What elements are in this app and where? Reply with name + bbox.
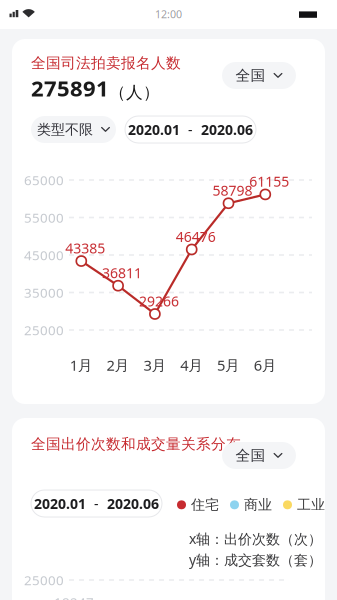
staticText: - [180, 120, 201, 139]
staticText: 全国司法拍卖报名人数 [31, 54, 181, 72]
staticText: 18247 [54, 593, 94, 600]
staticText: 35000 [24, 283, 64, 302]
staticText: 25000 [24, 571, 64, 589]
staticText: 12:00 [155, 7, 182, 21]
staticText: 3月 [143, 355, 166, 375]
staticText: 2020.01 [34, 494, 86, 513]
staticText: 46476 [176, 227, 216, 246]
staticText: 55000 [24, 208, 64, 227]
staticText: 36811 [102, 263, 142, 282]
button[interactable]: 类型不限 [31, 116, 116, 143]
staticText: 商业 [244, 496, 272, 514]
staticText: 275891 [31, 73, 109, 103]
staticText: 2020.01 [128, 120, 180, 139]
button[interactable]: 2020.01 [31, 490, 162, 517]
staticText: 65000 [24, 171, 64, 189]
staticText: 全国 [235, 66, 265, 85]
staticText: x轴：出价次数（次） [189, 529, 322, 548]
staticText: 全国出价次数和成交量关系分布 [31, 435, 241, 453]
staticText: 2020.06 [107, 494, 159, 513]
staticText: 61155 [249, 172, 289, 191]
staticText: 工业 [297, 496, 325, 514]
staticText: 4月 [180, 355, 203, 375]
staticText: 29266 [139, 291, 179, 311]
staticText: 45000 [24, 246, 64, 264]
staticText: 58798 [212, 181, 252, 200]
staticText: 2月 [107, 355, 130, 375]
staticText: y轴：成交套数（套） [189, 550, 322, 569]
staticText: 6月 [254, 355, 277, 375]
staticText: （人） [109, 82, 160, 103]
staticText: 住宅 [191, 496, 219, 514]
staticText: 全国 [235, 446, 265, 465]
button[interactable]: 全国 [222, 62, 296, 89]
staticText: - [86, 494, 107, 513]
staticText: 25000 [24, 321, 64, 339]
button[interactable]: 2020.01 [125, 116, 256, 143]
staticText: 43385 [65, 238, 105, 258]
staticText: 2020.06 [201, 120, 253, 139]
staticText: 类型不限 [37, 121, 93, 138]
staticText: 5月 [217, 355, 240, 375]
staticText: 1月 [70, 355, 93, 375]
button[interactable]: 全国 [222, 442, 296, 469]
